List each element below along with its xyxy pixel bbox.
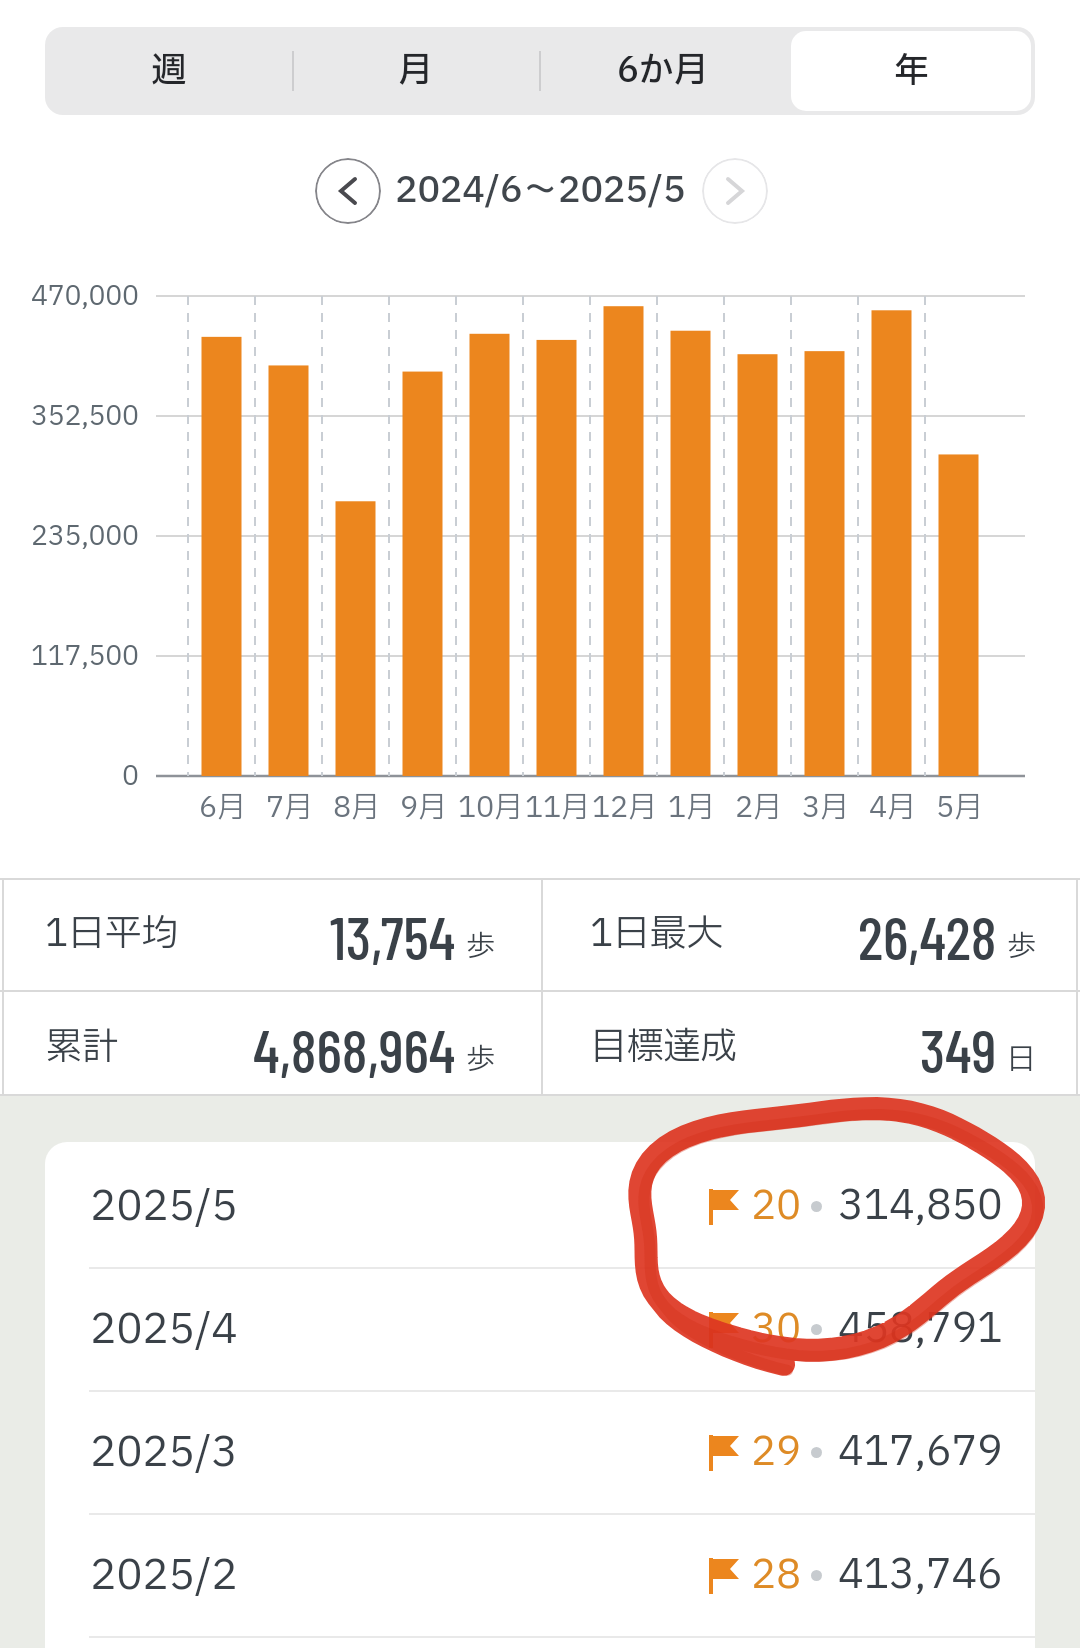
staticText: 235,000 (31, 516, 139, 556)
staticText: 349 (920, 1013, 997, 1081)
staticText: 8月 (333, 786, 380, 826)
staticText: 4,868,964 (253, 1013, 456, 1081)
staticText: 26,428 (858, 900, 997, 968)
staticText: 9月 (400, 786, 447, 826)
staticText: 3月 (802, 786, 849, 826)
staticText: 117,500 (31, 636, 139, 676)
staticText: 2025/4 (90, 1298, 238, 1361)
staticText: 413,746 (838, 1545, 1003, 1606)
staticText: 29 (751, 1423, 801, 1483)
staticText: 6月 (199, 786, 246, 826)
button[interactable]: 2025/3 (45, 1392, 1035, 1513)
staticText: 5月 (936, 786, 983, 826)
button[interactable]: 6か月 (539, 27, 787, 115)
staticText: 2024/6〜2025/5 (395, 164, 686, 218)
staticText: 2025/2 (90, 1544, 238, 1607)
staticText: 2月 (735, 786, 782, 826)
button[interactable]: 2025/5 (45, 1146, 1035, 1267)
staticText: 458,791 (838, 1299, 1003, 1360)
staticText: 日 (1007, 1038, 1036, 1081)
staticText: 累計 (45, 1020, 119, 1075)
staticText: 28 (751, 1546, 801, 1606)
button[interactable]: 年 (787, 27, 1035, 115)
staticText: 30 (751, 1300, 801, 1360)
staticText: 歩 (466, 1038, 495, 1081)
button[interactable] (315, 158, 381, 224)
staticText: 7月 (266, 786, 313, 826)
staticText: 1月 (668, 786, 715, 826)
staticText: 月 (398, 45, 433, 97)
staticText: 314,850 (838, 1176, 1003, 1237)
staticText: 352,500 (31, 396, 139, 436)
staticText: 1日平均 (45, 907, 179, 962)
staticText: 2025/3 (90, 1421, 238, 1484)
staticText: 目標達成 (590, 1020, 737, 1075)
staticText: 20 (751, 1177, 801, 1237)
staticText: 11月 (525, 786, 590, 826)
button[interactable] (702, 158, 768, 224)
staticText: 10月 (458, 786, 523, 826)
staticText: 470,000 (31, 276, 139, 316)
staticText: 0 (122, 756, 139, 796)
button[interactable]: 月 (292, 27, 539, 115)
staticText: 6か月 (617, 45, 709, 97)
staticText: 年 (894, 45, 929, 97)
staticText: 1日最大 (590, 907, 724, 962)
staticText: 歩 (1007, 925, 1036, 968)
staticText: 2025/5 (90, 1175, 238, 1238)
staticText: 歩 (466, 925, 495, 968)
button[interactable]: 週 (45, 27, 292, 115)
staticText: 417,679 (838, 1422, 1003, 1483)
staticText: 13,754 (330, 900, 456, 968)
staticText: 4月 (869, 786, 916, 826)
button[interactable]: 2025/2 (45, 1515, 1035, 1636)
staticText: 週 (151, 45, 186, 97)
button[interactable]: 2025/4 (45, 1269, 1035, 1390)
staticText: 12月 (592, 786, 657, 826)
